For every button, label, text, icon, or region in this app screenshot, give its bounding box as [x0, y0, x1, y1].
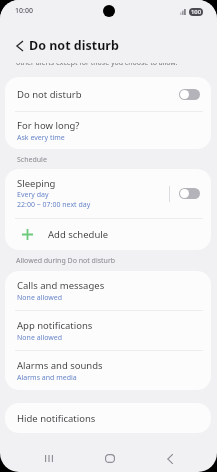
button[interactable]: Navigate up [6, 33, 28, 59]
staticText: 10:00 [15, 6, 33, 16]
staticText: Allowed during Do not disturb [16, 256, 116, 266]
staticText: Do not disturb [29, 37, 119, 54]
staticText: 100 [191, 8, 202, 16]
staticText: Ask every time [17, 133, 65, 143]
button[interactable]: For how long? [5, 112, 211, 149]
staticText: Schedule [17, 155, 47, 165]
staticText: Every day [17, 190, 49, 200]
button[interactable]: Do not disturb [5, 77, 211, 111]
staticText: Sleeping [17, 177, 56, 190]
staticText: Alarms and sounds [17, 359, 103, 372]
button[interactable]: Toggle [179, 188, 200, 199]
staticText: Add schedule [48, 228, 109, 241]
button[interactable]: Add schedule [5, 219, 211, 250]
staticText: Do not disturb [17, 88, 179, 101]
button[interactable]: Toggle [179, 89, 200, 100]
staticText: For how long? [17, 119, 80, 132]
button[interactable]: App notifications [5, 311, 211, 350]
staticText: other alerts except for those you choose… [16, 58, 178, 68]
staticText: None allowed [17, 333, 63, 343]
staticText: Hide notifications [17, 412, 96, 425]
button[interactable]: Back [152, 444, 188, 468]
staticText: App notifications [17, 319, 93, 332]
staticText: None allowed [17, 293, 63, 303]
button[interactable]: Hide notifications [5, 403, 211, 433]
staticText: 22:00 ~ 07:00 next day [17, 200, 91, 210]
button[interactable]: Sleeping [5, 169, 211, 218]
staticText: Calls and messages [17, 279, 105, 292]
button[interactable]: Alarms and sounds [5, 351, 211, 390]
button[interactable]: Calls and messages [5, 271, 211, 310]
staticText: Alarms and media [17, 373, 77, 383]
button[interactable]: Home [92, 444, 128, 468]
button[interactable]: Recent apps [30, 444, 66, 468]
